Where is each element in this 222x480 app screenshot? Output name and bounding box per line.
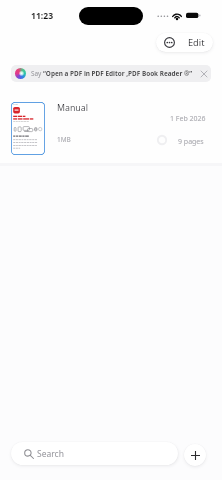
staticText: Say “Open a PDF in PDF Editor ,PDF Book … — [31, 69, 193, 78]
staticText: 1MB — [57, 135, 71, 144]
button[interactable]: Search — [11, 442, 178, 465]
staticText: Search — [37, 448, 64, 460]
button[interactable]: Add — [184, 444, 206, 466]
button[interactable]: Edit — [179, 33, 213, 52]
staticText: 11:23 — [31, 10, 54, 22]
button[interactable]: Manual — [0, 94, 222, 162]
staticText: 9 pages — [178, 137, 204, 147]
staticText: Edit — [188, 36, 205, 49]
staticText: 1 Feb 2026 — [170, 114, 206, 124]
button[interactable]: Say “Open a PDF in PDF Editor ,PDF Book … — [11, 65, 211, 82]
button[interactable]: More options — [160, 33, 179, 52]
staticText: Manual — [57, 102, 88, 114]
button[interactable]: Close — [197, 67, 211, 81]
